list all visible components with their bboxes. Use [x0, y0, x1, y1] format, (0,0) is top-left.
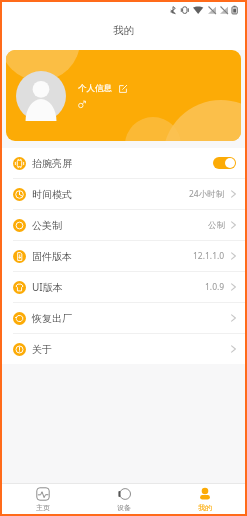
button[interactable]: 恢复出厂 [2, 303, 245, 333]
button[interactable]: 关于 [2, 334, 245, 364]
staticText: 设备 [117, 503, 131, 512]
staticText: 我的 [198, 503, 212, 512]
button[interactable]: 抬腕亮屏 [2, 148, 245, 178]
staticText: 公制 [208, 220, 225, 231]
button[interactable]: 固件版本 [2, 241, 245, 271]
staticText: 时间模式 [32, 188, 72, 201]
staticText: 公美制 [32, 219, 62, 232]
button[interactable]: 时间模式 [2, 179, 245, 209]
button[interactable]: 设备 [83, 484, 164, 514]
staticText: 主页 [36, 503, 50, 512]
staticText: 恢复出厂 [32, 312, 72, 325]
staticText: 12.1.1.0 [193, 250, 225, 262]
staticText: 我的 [113, 24, 134, 37]
button[interactable]: UI版本 [2, 272, 245, 302]
staticText: UI版本 [32, 280, 63, 294]
button[interactable]: 公美制 [2, 210, 245, 240]
staticText: 固件版本 [32, 250, 72, 263]
staticText: 抬腕亮屏 [32, 157, 72, 170]
staticText: 关于 [32, 343, 52, 356]
button[interactable]: 我的 [164, 484, 245, 514]
button[interactable]: 主页 [2, 484, 83, 514]
staticText: 个人信息 [78, 83, 112, 94]
staticText: 1.0.9 [205, 281, 225, 293]
staticText: 24小时制 [189, 188, 225, 200]
button[interactable]: 个人信息 [6, 50, 241, 141]
other: Edit profile [119, 85, 127, 93]
button[interactable]: Toggle [213, 157, 236, 169]
